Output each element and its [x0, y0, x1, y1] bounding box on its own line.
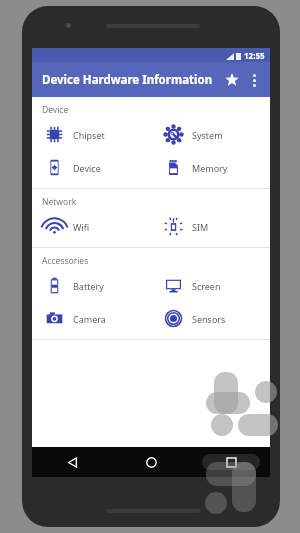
staticText: Camera: [73, 313, 106, 325]
button[interactable]: Sensors: [151, 302, 270, 335]
button[interactable]: Chipset: [32, 118, 151, 151]
staticText: Device: [42, 104, 69, 116]
staticText: Sensors: [192, 313, 226, 325]
staticText: Chipset: [73, 129, 105, 141]
button[interactable]: Device: [32, 151, 151, 184]
staticText: Battery: [73, 280, 104, 292]
staticText: SIM: [192, 221, 209, 233]
button[interactable]: Screen: [151, 269, 270, 302]
button[interactable]: More options: [244, 70, 264, 90]
button[interactable]: SIM: [151, 210, 270, 243]
staticText: Accessories: [42, 255, 89, 267]
staticText: Device: [73, 162, 101, 174]
button[interactable]: Battery: [32, 269, 151, 302]
staticText: Wifi: [73, 221, 90, 233]
button[interactable]: Home: [112, 447, 191, 477]
button[interactable]: Wifi: [32, 210, 151, 243]
staticText: Memory: [192, 162, 228, 174]
button[interactable]: Recents: [191, 447, 270, 477]
button[interactable]: Favorite: [220, 68, 244, 92]
button[interactable]: Memory: [151, 151, 270, 184]
button[interactable]: System: [151, 118, 270, 151]
staticText: Device Hardware Information: [42, 72, 213, 88]
staticText: Network: [42, 196, 77, 208]
staticText: 12:55: [244, 50, 265, 61]
button[interactable]: Camera: [32, 302, 151, 335]
staticText: Screen: [192, 280, 221, 292]
staticText: System: [192, 129, 223, 141]
button[interactable]: Back: [32, 447, 112, 477]
